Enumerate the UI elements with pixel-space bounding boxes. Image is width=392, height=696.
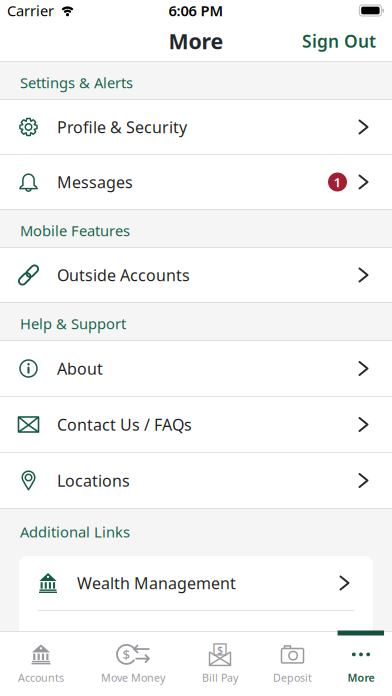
staticText: More: [168, 27, 223, 55]
staticText: Deposit: [273, 670, 312, 685]
button[interactable]: Profile & Security: [0, 100, 392, 154]
button[interactable]: Contact Us / FAQs: [0, 397, 392, 452]
staticText: Outside Accounts: [57, 264, 190, 286]
button[interactable]: Wealth Management: [19, 556, 373, 610]
button[interactable]: Accounts: [18, 643, 64, 685]
staticText: Carrier: [7, 1, 54, 20]
staticText: 1: [333, 173, 341, 191]
button[interactable]: $: [101, 643, 165, 685]
staticText: Bill Pay: [202, 670, 238, 685]
staticText: Additional Links: [20, 522, 130, 541]
staticText: $: [122, 646, 130, 663]
button[interactable]: Outside Accounts: [0, 248, 392, 302]
staticText: Settings & Alerts: [20, 73, 133, 92]
button[interactable]: Deposit: [273, 643, 312, 685]
staticText: $: [217, 643, 223, 657]
staticText: Help & Support: [20, 314, 126, 333]
staticText: Sign Out: [302, 29, 376, 52]
staticText: 6:06 PM: [168, 1, 223, 20]
staticText: Messages: [57, 171, 133, 193]
button[interactable]: Sign Out: [302, 29, 376, 52]
staticText: Locations: [57, 470, 130, 491]
staticText: Profile & Security: [57, 116, 187, 138]
staticText: More: [347, 670, 374, 685]
button[interactable]: Locations: [0, 453, 392, 508]
button[interactable]: $: [202, 643, 238, 685]
button[interactable]: Messages: [0, 155, 392, 209]
staticText: About: [57, 358, 103, 379]
staticText: Move Money: [101, 670, 165, 685]
staticText: Contact Us / FAQs: [57, 414, 192, 435]
button[interactable]: More: [347, 643, 374, 685]
staticText: Mobile Features: [20, 221, 130, 240]
staticText: Wealth Management: [77, 572, 236, 594]
staticText: Accounts: [18, 670, 64, 685]
button[interactable]: About: [0, 341, 392, 396]
